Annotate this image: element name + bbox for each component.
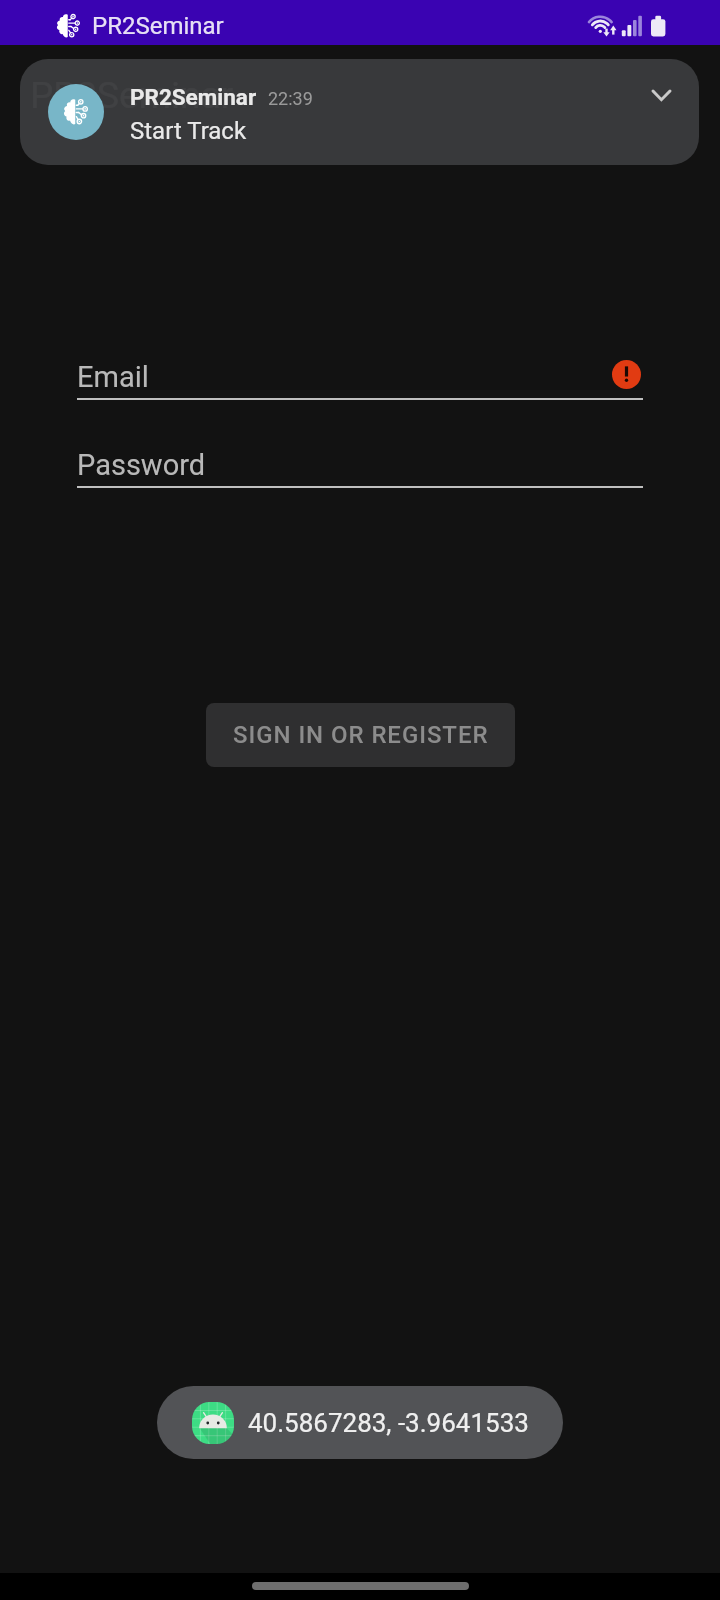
button[interactable]: Password: [77, 444, 643, 488]
staticText: Password: [77, 448, 206, 482]
staticText: 22:39: [268, 88, 313, 109]
staticText: Start Track: [130, 117, 247, 145]
staticText: PR2Seminar: [30, 74, 234, 117]
staticText: Email: [77, 360, 149, 394]
button[interactable]: SIGN IN OR REGISTER: [206, 703, 515, 767]
staticText: 40.5867283, -3.9641533: [248, 1408, 529, 1438]
staticText: PR2Seminar: [92, 12, 224, 40]
staticText: SIGN IN OR REGISTER: [233, 721, 489, 749]
button[interactable]: Email: [77, 356, 643, 400]
button[interactable]: Expand notification: [633, 66, 691, 124]
other: Error: [612, 360, 641, 389]
staticText: PR2Seminar: [130, 84, 257, 110]
button[interactable]: PR2Seminar: [20, 59, 699, 165]
